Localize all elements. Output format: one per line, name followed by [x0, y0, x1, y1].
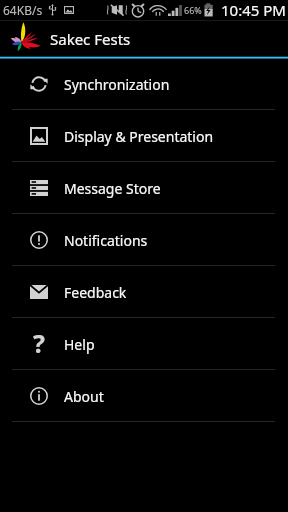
button[interactable]: Message Store	[0, 162, 288, 214]
button[interactable]: Feedback	[0, 266, 288, 318]
staticText: ?	[33, 326, 45, 360]
staticText: Synchronization	[64, 75, 170, 94]
button[interactable]: Synchronization	[0, 58, 288, 110]
button[interactable]: Display & Presentation	[0, 110, 288, 162]
button[interactable]: ?	[0, 318, 288, 370]
staticText: Help	[64, 335, 95, 354]
button[interactable]: About	[0, 370, 288, 422]
staticText: Message Store	[64, 179, 161, 198]
button[interactable]: Notifications	[0, 214, 288, 266]
staticText: About	[64, 387, 104, 406]
staticText: Feedback	[64, 283, 127, 302]
staticText: 64KB/s	[3, 2, 43, 18]
staticText: Display & Presentation	[64, 127, 214, 146]
staticText: Notifications	[64, 231, 148, 250]
staticText: 10:45 PM	[221, 0, 286, 20]
staticText: 66%	[184, 4, 202, 16]
staticText: Sakec Fests	[50, 29, 131, 49]
